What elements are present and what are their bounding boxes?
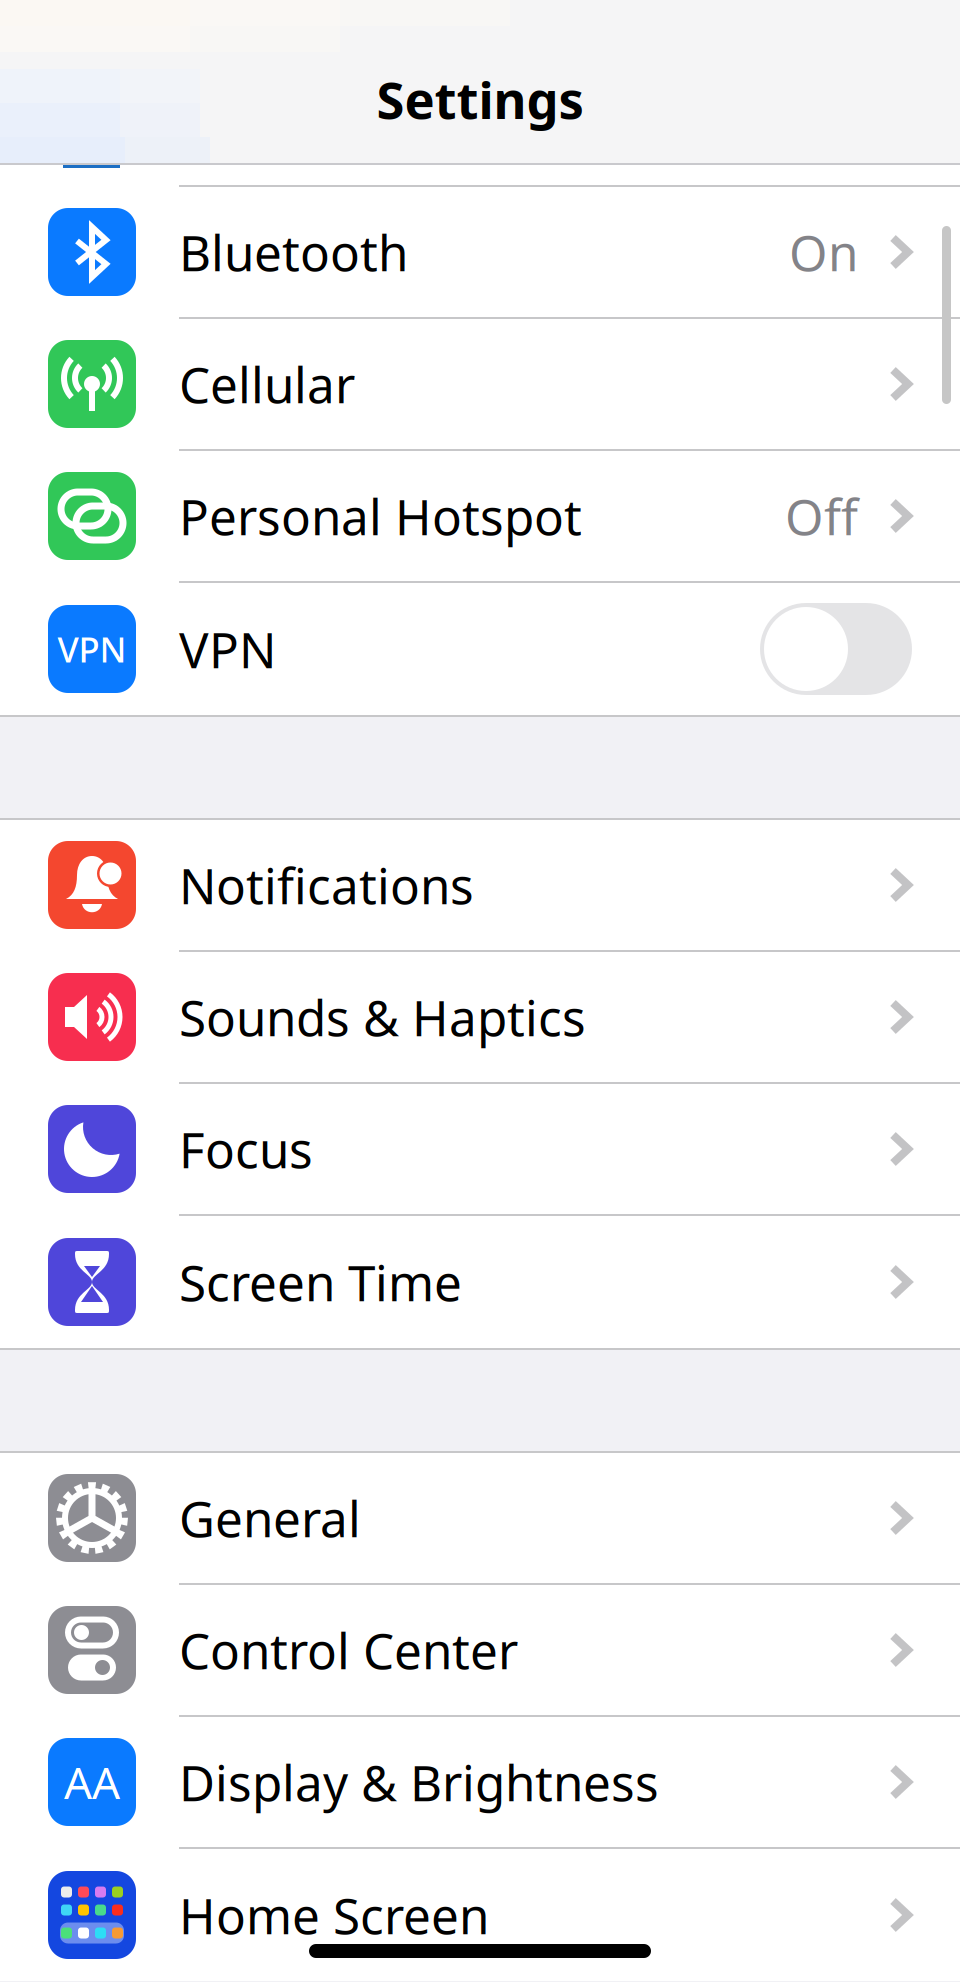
staticText: Home Screen	[179, 1882, 489, 1948]
button[interactable]: Sounds & Haptics	[0, 952, 960, 1084]
button[interactable]: Personal Hotspot	[0, 451, 960, 583]
staticText: VPN	[57, 626, 126, 672]
staticText: Notifications	[179, 852, 474, 918]
staticText: Sounds & Haptics	[179, 984, 586, 1050]
staticText: General	[179, 1485, 361, 1551]
button[interactable]: Notifications	[0, 820, 960, 952]
staticText: Bluetooth	[179, 219, 408, 285]
button[interactable]: Cellular	[0, 319, 960, 451]
button[interactable]: VPN	[0, 583, 960, 715]
staticText: On	[789, 219, 858, 285]
staticText: VPN	[179, 616, 276, 682]
staticText: Off	[785, 483, 858, 549]
button[interactable]: Screen Time	[0, 1216, 960, 1348]
staticText: Settings	[376, 66, 583, 133]
button[interactable]: Control Center	[0, 1585, 960, 1717]
staticText: Screen Time	[179, 1249, 462, 1315]
button[interactable]: Bluetooth	[0, 187, 960, 319]
button[interactable]: Focus	[0, 1084, 960, 1216]
button[interactable]: AA	[0, 1717, 960, 1849]
staticText: Control Center	[179, 1617, 518, 1683]
staticText: Cellular	[179, 351, 355, 417]
staticText: Personal Hotspot	[179, 483, 582, 549]
button[interactable]: Home Screen	[0, 1849, 960, 1981]
button[interactable]: General	[0, 1453, 960, 1585]
staticText: Focus	[179, 1116, 313, 1182]
staticText: Display & Brightness	[179, 1749, 659, 1815]
staticText: AA	[64, 1753, 120, 1811]
